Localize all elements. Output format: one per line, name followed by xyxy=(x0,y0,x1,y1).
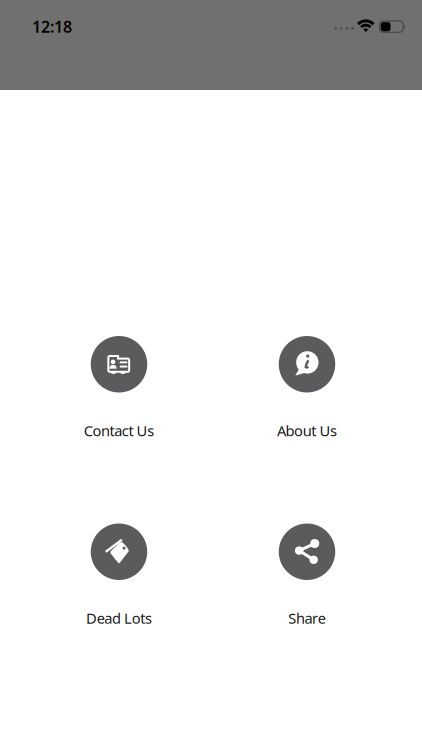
button[interactable]: Contact Us xyxy=(44,336,194,441)
button[interactable]: Dead Lots xyxy=(44,523,194,629)
staticText: Dead Lots xyxy=(86,608,152,628)
staticText: Contact Us xyxy=(84,421,154,440)
button[interactable]: About Us xyxy=(232,336,382,441)
staticText: About Us xyxy=(277,421,337,440)
staticText: 12:18 xyxy=(32,16,72,37)
button[interactable]: Share xyxy=(232,523,382,629)
staticText: Share xyxy=(288,608,326,628)
